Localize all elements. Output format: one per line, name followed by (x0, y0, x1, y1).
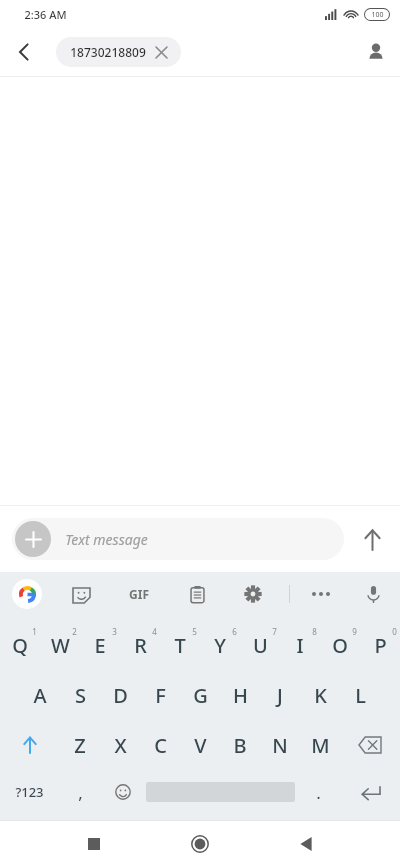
staticText: W (51, 632, 70, 659)
staticText: D (113, 682, 128, 709)
button[interactable]: ?123 (0, 772, 59, 812)
button[interactable]: G (180, 672, 220, 718)
staticText: ?123 (15, 783, 44, 801)
button[interactable]: , (59, 772, 101, 812)
button[interactable]: Backspace (340, 722, 400, 768)
staticText: R (134, 632, 147, 659)
button[interactable]: Recents (70, 821, 118, 866)
button[interactable]: W (40, 622, 80, 668)
staticText: 5 (192, 626, 197, 637)
button[interactable]: Clipboard (180, 577, 214, 611)
button[interactable]: Emoji (101, 772, 144, 812)
staticText: 7 (272, 626, 277, 637)
staticText: 6 (232, 626, 237, 637)
button[interactable]: Settings (236, 577, 270, 611)
staticText: Q (12, 632, 28, 659)
button[interactable]: Enter (340, 772, 400, 812)
staticText: 9 (352, 626, 357, 637)
button[interactable]: GIF (120, 575, 158, 613)
button[interactable]: V (180, 722, 220, 768)
staticText: B (233, 732, 247, 759)
staticText: S (75, 682, 86, 709)
button[interactable]: T (160, 622, 200, 668)
staticText: A (33, 682, 47, 709)
button[interactable]: P (360, 622, 400, 668)
button[interactable]: I (280, 622, 320, 668)
button[interactable]: Q (0, 622, 40, 668)
button[interactable]: Home (176, 821, 224, 866)
button[interactable]: F (140, 672, 180, 718)
staticText: M (311, 732, 330, 759)
button[interactable]: R (120, 622, 160, 668)
staticText: 1 (32, 626, 37, 637)
button[interactable]: N (260, 722, 300, 768)
staticText: 2:36 AM (24, 7, 67, 22)
staticText: 3 (112, 626, 117, 637)
button[interactable]: X (100, 722, 140, 768)
staticText: 18730218809 (70, 44, 146, 60)
staticText: J (277, 682, 283, 709)
button[interactable]: Shift (0, 722, 60, 768)
button[interactable]: C (140, 722, 180, 768)
staticText: L (355, 682, 366, 709)
staticText: N (272, 732, 288, 759)
staticText: T (174, 632, 186, 659)
button[interactable]: Voice input (356, 577, 390, 611)
button[interactable]: U (240, 622, 280, 668)
staticText: P (374, 632, 387, 659)
button[interactable]: M (300, 722, 340, 768)
staticText: V (194, 732, 207, 759)
staticText: 4 (152, 626, 157, 637)
button[interactable]: B (220, 722, 260, 768)
button[interactable]: S (60, 672, 100, 718)
button[interactable]: Google (12, 579, 42, 609)
staticText: U (253, 632, 268, 659)
staticText: F (155, 682, 166, 709)
button[interactable]: E (80, 622, 120, 668)
button[interactable]: . (297, 772, 340, 812)
button[interactable]: Z (60, 722, 100, 768)
staticText: Y (214, 632, 226, 659)
staticText: 2 (72, 626, 77, 637)
button[interactable]: Back (0, 28, 48, 76)
button[interactable]: O (320, 622, 360, 668)
staticText: Z (74, 732, 86, 759)
button[interactable]: H (220, 672, 260, 718)
button[interactable]: Contact details (352, 28, 400, 76)
staticText: H (233, 682, 248, 709)
staticText: 100 (371, 10, 384, 20)
staticText: X (114, 732, 127, 759)
staticText: , (78, 781, 83, 804)
button[interactable]: Y (200, 622, 240, 668)
staticText: . (316, 781, 321, 804)
button[interactable]: L (340, 672, 380, 718)
button[interactable]: Stickers (64, 577, 98, 611)
staticText: I (296, 632, 304, 659)
button[interactable]: More options (304, 577, 338, 611)
staticText: K (314, 682, 327, 709)
staticText: E (94, 632, 106, 659)
button[interactable]: Send (344, 511, 400, 567)
staticText: 0 (392, 626, 397, 637)
staticText: C (154, 732, 167, 759)
staticText: GIF (129, 586, 149, 602)
button[interactable]: J (260, 672, 300, 718)
button[interactable]: Add attachment (12, 518, 344, 560)
staticText: G (193, 682, 208, 709)
button[interactable]: 18730218809 (56, 37, 181, 67)
button[interactable]: A (20, 672, 60, 718)
button[interactable]: K (300, 672, 340, 718)
staticText: Text message (65, 530, 148, 549)
staticText: 8 (312, 626, 317, 637)
button[interactable]: Add attachment (15, 521, 51, 557)
staticText: O (332, 632, 348, 659)
button[interactable]: Back (282, 821, 330, 866)
button[interactable]: D (100, 672, 140, 718)
